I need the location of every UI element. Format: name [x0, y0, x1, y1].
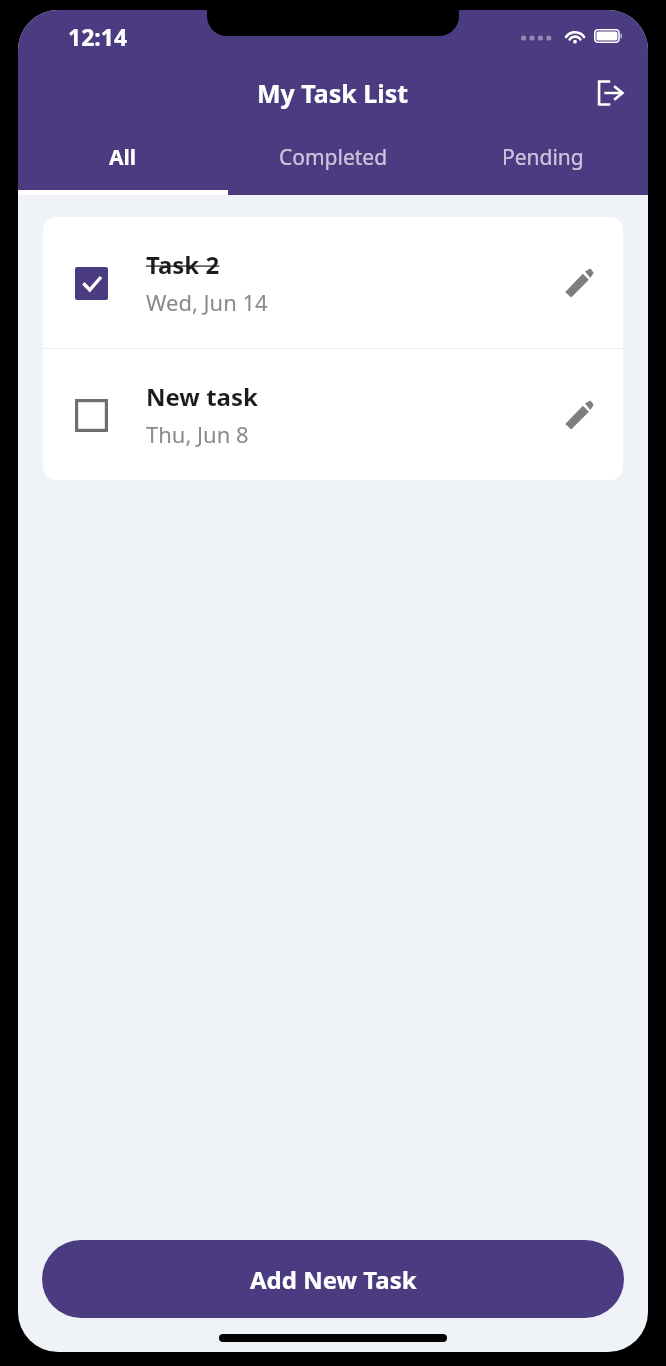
button[interactable]: Mark complete — [69, 393, 113, 437]
button[interactable]: Mark incomplete — [69, 261, 113, 305]
button[interactable]: Edit task — [555, 391, 603, 439]
staticText: All — [109, 143, 137, 172]
staticText: Wed, Jun 14 — [146, 287, 268, 317]
staticText: Thu, Jun 8 — [146, 419, 249, 449]
staticText: New task — [146, 380, 258, 413]
button[interactable]: Mark complete — [43, 349, 623, 480]
staticText: Completed — [279, 143, 388, 172]
button[interactable]: Log out — [586, 69, 634, 117]
staticText: My Task List — [257, 76, 409, 110]
button[interactable]: Completed — [228, 124, 438, 190]
button[interactable]: Pending — [438, 124, 648, 190]
button[interactable]: Add New Task — [42, 1240, 624, 1318]
staticText: 12:14 — [68, 21, 128, 52]
staticText: Pending — [502, 143, 584, 172]
button[interactable]: Mark incomplete — [43, 217, 623, 348]
button[interactable]: Edit task — [555, 259, 603, 307]
staticText: Task 2 — [146, 248, 220, 281]
staticText: Add New Task — [250, 1263, 417, 1296]
button[interactable]: All — [18, 124, 228, 190]
